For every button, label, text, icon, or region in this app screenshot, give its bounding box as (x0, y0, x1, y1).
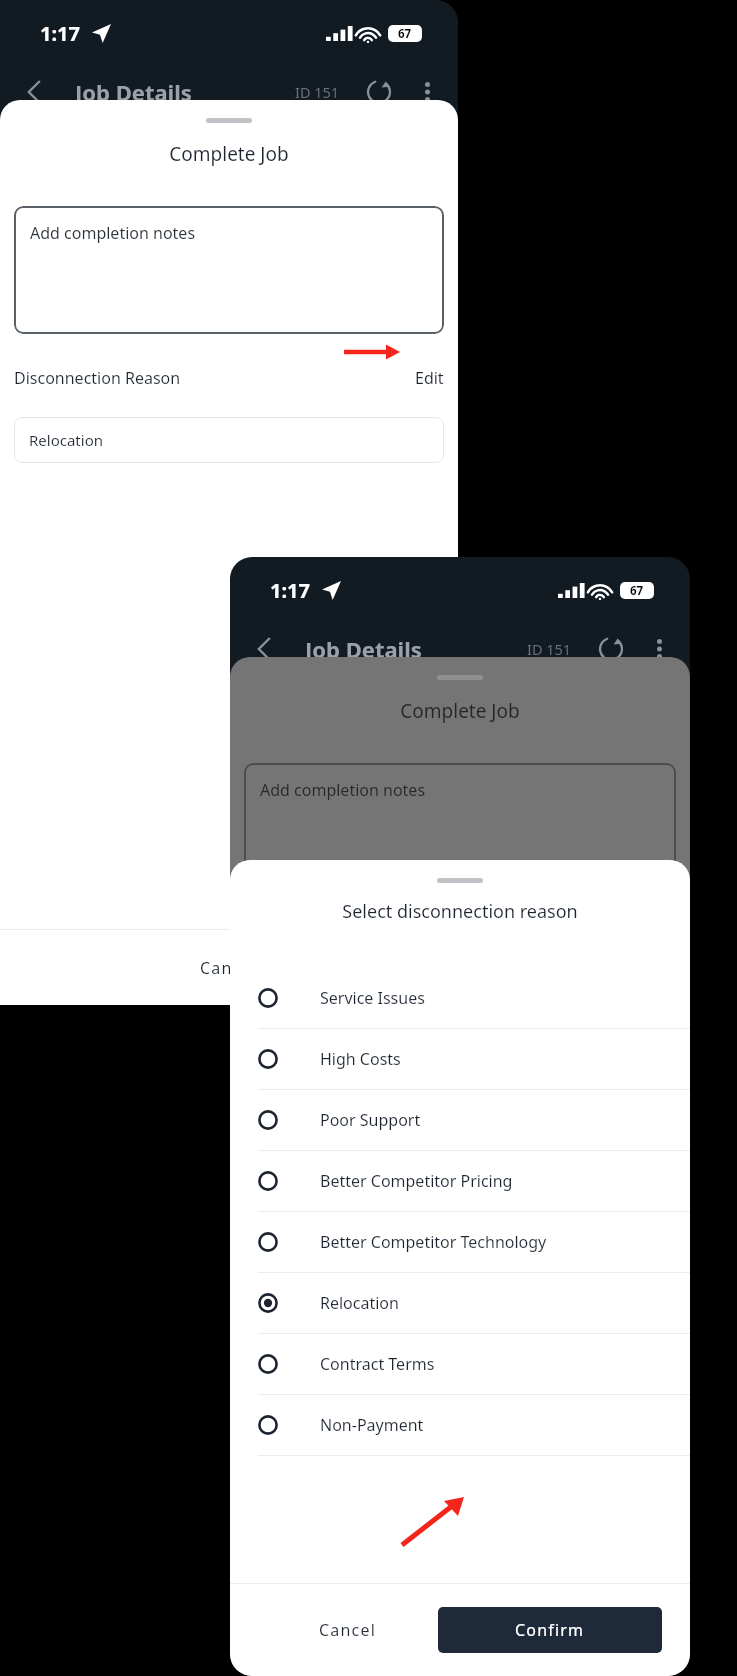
button[interactable]: Confirm (438, 1607, 662, 1653)
staticText: Disconnection Reason (14, 367, 181, 389)
button[interactable]: Poor Support (230, 1090, 690, 1151)
staticText: Job Details (305, 634, 422, 664)
staticText: 1:17 (40, 20, 80, 47)
button[interactable]: Better Competitor Technology (230, 1212, 690, 1273)
staticText: Edit (415, 367, 444, 389)
button[interactable]: Service Issues (230, 968, 690, 1029)
button[interactable]: Cancel (0, 930, 458, 1005)
staticText: Confirm (515, 1619, 585, 1641)
button[interactable]: Add completion notes (14, 206, 444, 334)
button[interactable]: Cancel (258, 1584, 438, 1676)
button[interactable]: Contract Terms (230, 1334, 690, 1395)
staticText: Select disconnection reason (230, 899, 690, 924)
staticText: Cancel (319, 1619, 377, 1641)
staticText: Job Details (75, 77, 192, 107)
staticText: Contract Terms (320, 1353, 435, 1375)
staticText: Complete Job (230, 698, 690, 724)
staticText: 67 (630, 583, 644, 599)
button[interactable]: Edit (415, 367, 444, 389)
staticText: Relocation (29, 430, 103, 450)
button[interactable]: Relocation (230, 1273, 690, 1334)
staticText: Relocation (320, 1292, 399, 1314)
button[interactable]: Non-Payment (230, 1395, 690, 1456)
button[interactable]: Better Competitor Pricing (230, 1151, 690, 1212)
staticText: Cancel (200, 957, 258, 979)
button[interactable]: Relocation (14, 417, 444, 463)
staticText: High Costs (320, 1048, 401, 1070)
staticText: ID 151 (527, 639, 572, 659)
staticText: Service Issues (320, 987, 425, 1009)
staticText: 67 (398, 26, 412, 42)
staticText: Add completion notes (30, 222, 196, 244)
staticText: 1:17 (270, 577, 310, 604)
staticText: Better Competitor Pricing (320, 1170, 513, 1192)
staticText: Better Competitor Technology (320, 1231, 547, 1253)
staticText: Poor Support (320, 1109, 421, 1131)
staticText: Non-Payment (320, 1414, 424, 1436)
staticText: Complete Job (0, 141, 458, 167)
button[interactable]: High Costs (230, 1029, 690, 1090)
staticText: Add completion notes (260, 779, 426, 801)
staticText: ID 151 (295, 82, 340, 102)
